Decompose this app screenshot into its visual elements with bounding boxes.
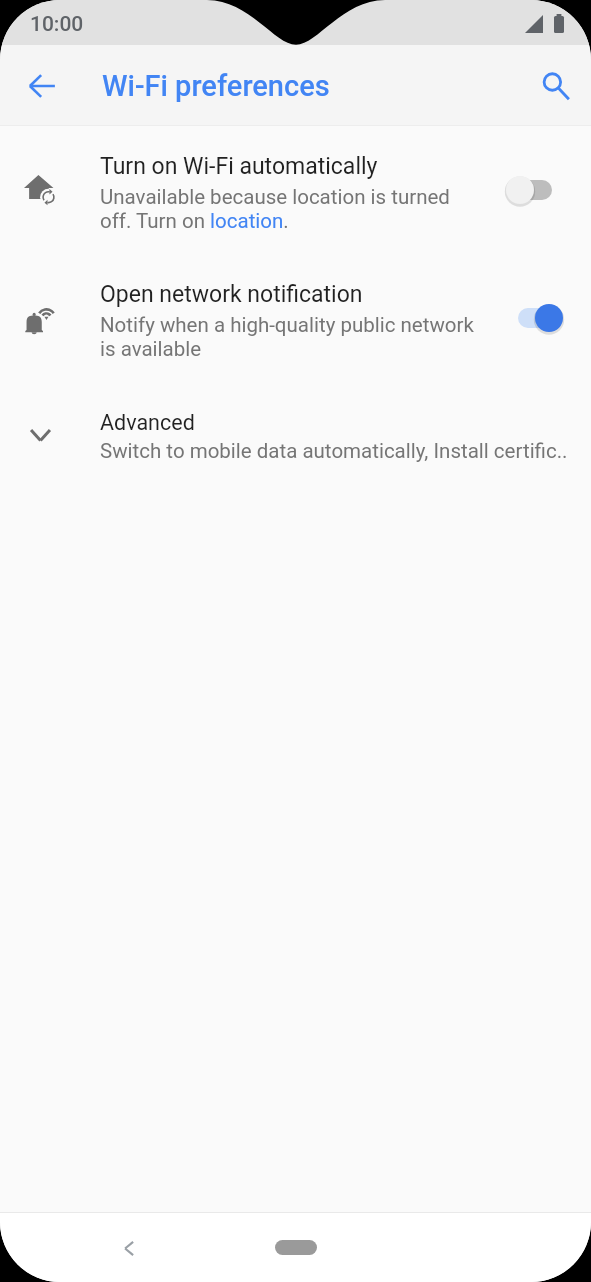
staticText: Unavailable because location is turned o… — [100, 185, 460, 233]
button[interactable]: Advanced — [0, 384, 591, 484]
button[interactable]: Open network notification — [0, 255, 591, 384]
staticText: Advanced — [100, 410, 195, 435]
button[interactable]: Turn on Wi-Fi automatically — [492, 166, 552, 214]
button[interactable]: Home — [275, 1240, 317, 1255]
button[interactable]: Turn on Wi-Fi automatically — [0, 126, 591, 255]
button[interactable]: Open network notification — [498, 294, 558, 342]
staticText: Open network notification — [100, 281, 363, 308]
staticText: Wi-Fi preferences — [102, 69, 330, 103]
staticText: Switch to mobile data automatically, Ins… — [100, 439, 568, 463]
staticText: Turn on Wi-Fi automatically — [100, 153, 378, 180]
button[interactable]: Navigate up — [14, 58, 70, 114]
staticText: 10:00 — [30, 12, 84, 37]
staticText: Notify when a high-quality public networ… — [100, 313, 480, 361]
button[interactable]: Search — [528, 58, 584, 114]
button[interactable]: Back — [107, 1226, 151, 1270]
